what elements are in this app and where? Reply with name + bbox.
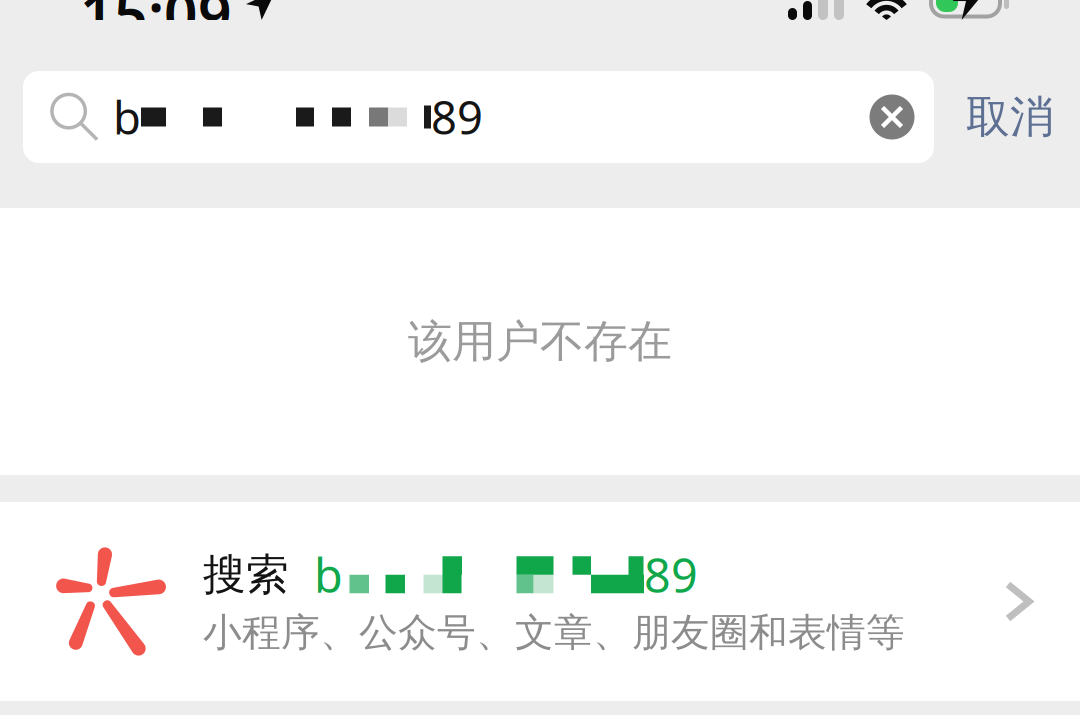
staticText: 小程序、公众号、文章、朋友圈和表情等 xyxy=(203,609,905,656)
staticText: 15:09 xyxy=(80,0,232,52)
staticText: 该用户不存在 xyxy=(408,314,672,368)
staticText: 89 xyxy=(644,544,698,606)
button[interactable]: Clear text xyxy=(850,71,934,163)
staticText: b xyxy=(314,544,343,606)
button[interactable]: 取消 xyxy=(934,71,1079,163)
staticText: 搜索 xyxy=(203,548,289,601)
staticText: 89 xyxy=(431,87,483,147)
staticText: b xyxy=(113,87,141,147)
staticText: 取消 xyxy=(966,90,1054,144)
button[interactable]: 搜索 xyxy=(0,502,1080,701)
